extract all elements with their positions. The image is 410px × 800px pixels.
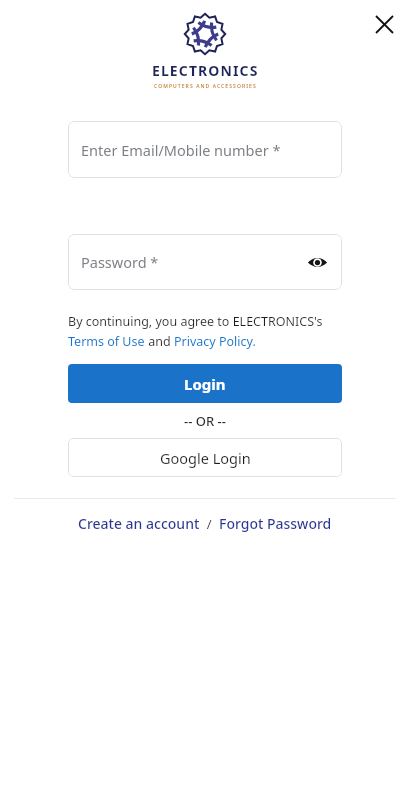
button[interactable]: Forgot Password — [219, 514, 332, 533]
button[interactable]: Terms of Use — [68, 333, 145, 350]
button[interactable]: Google Login — [68, 438, 342, 477]
staticText: Password * — [81, 252, 159, 272]
button[interactable]: Close — [364, 4, 404, 44]
staticText: / — [200, 515, 219, 533]
staticText: Login — [184, 374, 226, 394]
staticText: Enter Email/Mobile number * — [81, 140, 281, 160]
staticText: and — [145, 333, 174, 350]
staticText: COMPUTERS AND ACCESSORIES — [154, 83, 257, 90]
staticText: By continuing, you agree to ELECTRONICS'… — [68, 313, 323, 330]
button[interactable]: Password * — [68, 234, 342, 290]
button[interactable]: Create an account — [78, 514, 200, 533]
staticText: Create an account — [78, 514, 200, 533]
button[interactable]: Show password — [300, 245, 334, 279]
button[interactable]: Login — [68, 364, 342, 403]
button[interactable]: Privacy Policy. — [174, 333, 256, 350]
staticText: ELECTRONICS — [152, 61, 259, 80]
staticText: Google Login — [160, 448, 251, 468]
staticText: Forgot Password — [219, 514, 332, 533]
button[interactable]: Enter Email/Mobile number * — [68, 121, 342, 178]
staticText: -- OR -- — [184, 412, 226, 430]
